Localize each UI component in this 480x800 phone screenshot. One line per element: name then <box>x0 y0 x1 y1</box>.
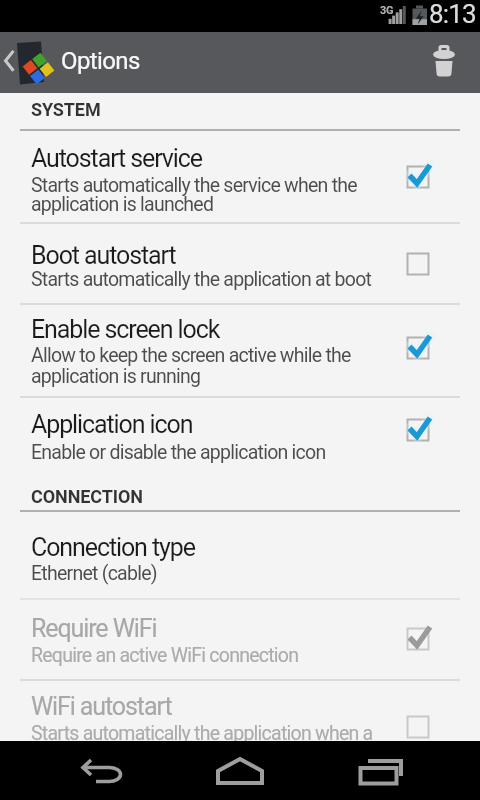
staticText: Application icon <box>31 410 193 439</box>
staticText: Options <box>61 47 140 75</box>
staticText: Starts automatically the service when th… <box>31 174 357 197</box>
staticText: Boot autostart <box>31 241 176 270</box>
staticText: SYSTEM <box>31 99 101 120</box>
staticText: Starts automatically the application whe… <box>31 722 373 745</box>
staticText: Autostart service <box>31 144 202 173</box>
staticText: 8:13 <box>429 0 476 29</box>
staticText: application is running <box>31 365 201 388</box>
staticText: Enable or disable the application icon <box>31 441 326 464</box>
staticText: Allow to keep the screen active while th… <box>31 344 351 367</box>
staticText: Connection type <box>31 533 195 562</box>
staticText: application is launched <box>31 193 214 216</box>
staticText: 3G <box>380 4 394 17</box>
staticText: Require WiFi <box>31 614 157 643</box>
staticText: Ethernet (cable) <box>31 562 157 585</box>
staticText: Enable screen lock <box>31 315 220 344</box>
staticText: WiFi autostart <box>31 692 172 721</box>
staticText: CONNECTION <box>31 486 143 507</box>
staticText: Require an active WiFi connection <box>31 644 299 667</box>
staticText: Starts automatically the application at … <box>31 268 372 291</box>
